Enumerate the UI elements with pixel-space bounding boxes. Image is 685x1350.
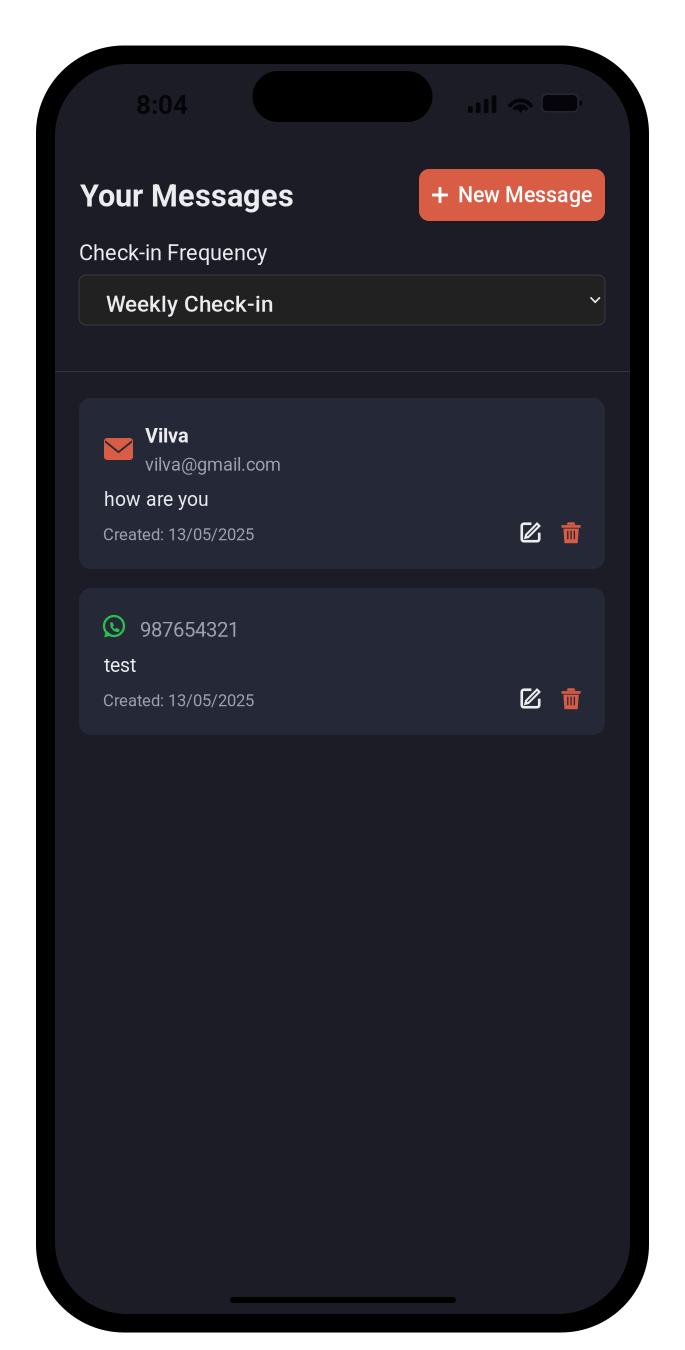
staticText: Created: 13/05/2025 (103, 525, 254, 544)
staticText: Weekly Check-in (106, 291, 273, 317)
staticText: Created: 13/05/2025 (103, 691, 254, 710)
staticText: how are you (104, 488, 209, 511)
staticText: 8:04 (136, 90, 188, 120)
staticText: Vilva (145, 424, 189, 447)
button[interactable]: Edit message (511, 515, 546, 550)
button[interactable]: Delete message (546, 515, 587, 549)
staticText: 987654321 (140, 618, 239, 642)
staticText: New Message (458, 182, 592, 207)
button[interactable]: New Message (419, 169, 605, 221)
staticText: Check-in Frequency (79, 240, 267, 265)
button[interactable]: Delete message (546, 681, 587, 715)
button[interactable]: Weekly Check-in (79, 275, 605, 325)
staticText: test (104, 654, 136, 677)
staticText: vilva@gmail.com (145, 454, 281, 475)
staticText: Your Messages (80, 178, 294, 214)
button[interactable]: Edit message (511, 681, 546, 716)
